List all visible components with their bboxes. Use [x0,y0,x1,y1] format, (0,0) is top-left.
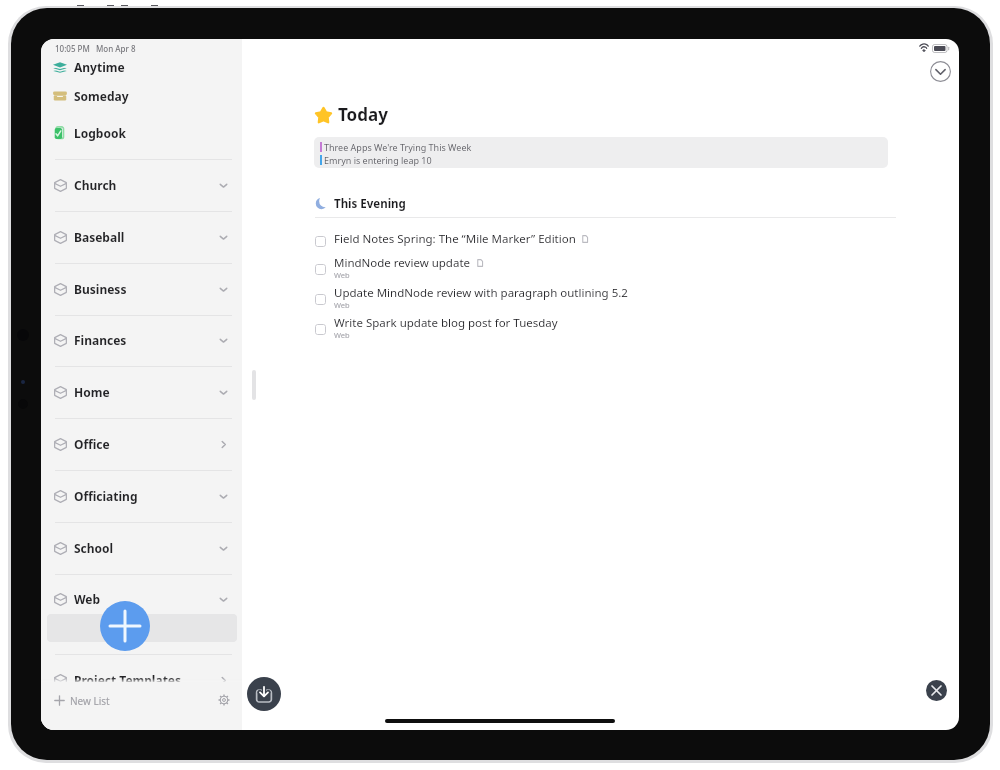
button[interactable]: Project Templates [41,667,242,693]
button[interactable]: New List [54,691,110,710]
staticText: Field Notes Spring: The “Mile Marker” Ed… [334,231,576,247]
staticText: New List [70,694,110,708]
button[interactable]: Web [41,586,242,612]
button[interactable]: Write Spark update blog post for Tuesday [314,315,896,344]
button[interactable]: Close [926,680,947,701]
staticText: Anytime [74,59,125,75]
button[interactable]: Officiating [41,483,242,509]
staticText: MindNode review update [334,255,471,271]
staticText: Office [74,436,110,452]
staticText: Three Apps We're Trying This Week [324,141,472,153]
staticText: Web [334,270,350,280]
button[interactable]: Home [41,379,242,405]
staticText: 10:05 PM Mon Apr 8 [55,43,136,54]
button[interactable]: Three Apps We're Trying This Week [314,137,888,168]
button[interactable]: MindNode review update [314,255,896,284]
button[interactable]: Someday [41,83,242,109]
button[interactable]: Collapse [930,61,951,82]
button[interactable]: Settings [218,694,230,706]
button[interactable]: Office [41,431,242,457]
button[interactable]: Finances [41,327,242,353]
button[interactable]: Logbook [41,120,242,146]
staticText: Someday [74,88,129,104]
button[interactable]: New to-do [100,601,150,651]
staticText: Finances [74,332,127,348]
button[interactable]: Update MindNode review with paragraph ou… [314,285,896,314]
staticText: Church [74,177,117,193]
button[interactable]: School [41,535,242,561]
staticText: Web [334,300,350,310]
staticText: Logbook [74,125,126,141]
staticText: Officiating [74,488,138,504]
staticText: Today [338,103,388,126]
staticText: Home [74,384,110,400]
staticText: This Evening [334,196,406,212]
staticText: Emryn is entering leap 10 [324,154,432,166]
staticText: Project Templates [74,672,182,688]
button[interactable]: Church [41,172,242,198]
staticText: Business [74,281,127,297]
button[interactable]: Field Notes Spring: The “Mile Marker” Ed… [314,231,896,255]
staticText: Baseball [74,229,125,245]
button[interactable]: Business [41,276,242,302]
staticText: Web [74,591,101,607]
staticText: Update MindNode review with paragraph ou… [334,285,628,301]
button[interactable]: Download [247,677,281,711]
staticText: Write Spark update blog post for Tuesday [334,315,558,331]
button[interactable]: Anytime [41,54,242,80]
staticText: School [74,540,114,556]
button[interactable]: Baseball [41,224,242,250]
staticText: Web [334,330,350,340]
